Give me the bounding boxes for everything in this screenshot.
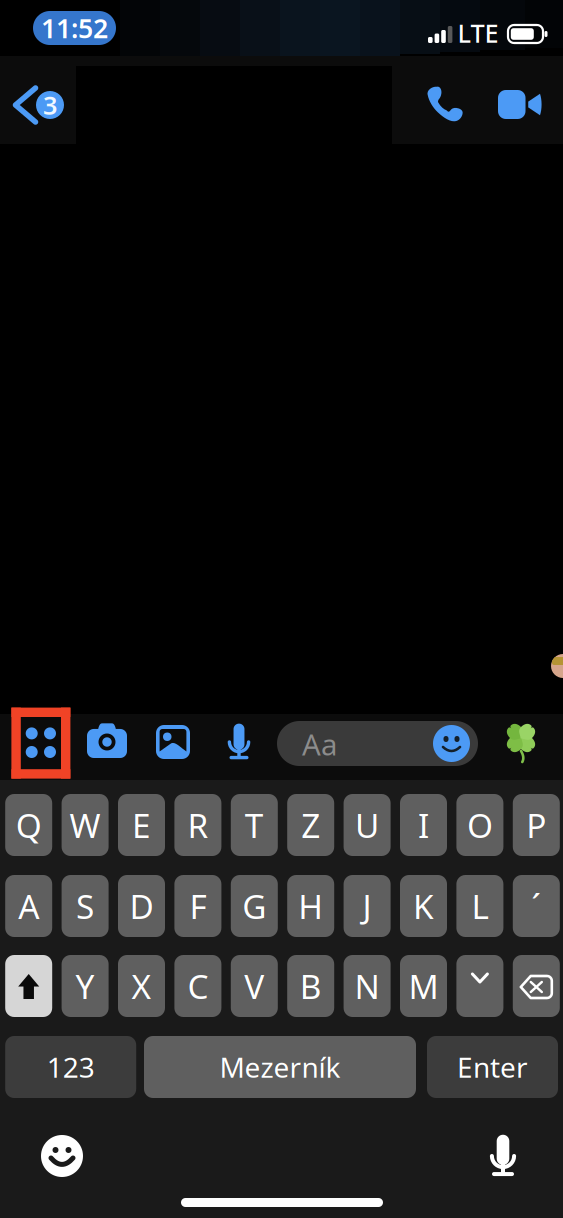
button[interactable]: Q xyxy=(5,794,52,856)
button[interactable]: Dictation xyxy=(462,1118,542,1194)
staticText: ´ xyxy=(531,883,541,929)
staticText: F xyxy=(189,884,206,928)
staticText: P xyxy=(526,803,546,847)
button[interactable]: Delete xyxy=(513,955,560,1017)
button[interactable]: H xyxy=(287,875,334,937)
button[interactable]: U xyxy=(344,794,391,856)
button[interactable]: K xyxy=(400,875,447,937)
staticText: J xyxy=(363,884,372,928)
staticText: 123 xyxy=(47,1048,95,1086)
button[interactable]: P xyxy=(513,794,560,856)
staticText: 11:52 xyxy=(41,10,108,46)
staticText: R xyxy=(187,803,208,847)
staticText: I xyxy=(418,803,429,847)
staticText: H xyxy=(298,884,323,928)
button[interactable]: Z xyxy=(287,794,334,856)
button[interactable]: N xyxy=(344,955,391,1017)
button[interactable]: Voice message xyxy=(216,714,262,780)
staticText: Aa xyxy=(302,724,337,763)
staticText: W xyxy=(70,803,101,847)
staticText: L xyxy=(471,884,488,928)
staticText: U xyxy=(355,803,379,847)
button[interactable]: E xyxy=(118,794,165,856)
button[interactable]: More characters xyxy=(456,955,503,1017)
staticText: K xyxy=(413,884,434,928)
staticText: E xyxy=(132,803,151,847)
staticText: X xyxy=(131,964,151,1008)
button[interactable]: Enter xyxy=(427,1036,558,1098)
button[interactable]: Message xyxy=(277,721,478,766)
staticText: Y xyxy=(76,964,95,1008)
button[interactable]: I xyxy=(400,794,447,856)
button[interactable]: More options xyxy=(0,700,76,786)
staticText: Q xyxy=(16,803,42,847)
staticText: LTE xyxy=(457,16,498,50)
button[interactable]: G xyxy=(231,875,278,937)
button[interactable]: W xyxy=(62,794,109,856)
staticText: C xyxy=(187,964,208,1008)
button[interactable]: A xyxy=(5,875,52,937)
button[interactable]: Back xyxy=(0,62,80,146)
button[interactable]: D xyxy=(118,875,165,937)
staticText: Z xyxy=(301,803,320,847)
button[interactable]: Video call xyxy=(484,73,546,135)
button[interactable]: O xyxy=(456,794,503,856)
staticText: 3 xyxy=(43,88,57,122)
button[interactable]: 123 xyxy=(5,1036,136,1098)
button[interactable]: L xyxy=(456,875,503,937)
staticText: N xyxy=(355,964,380,1008)
button[interactable]: M xyxy=(400,955,447,1017)
staticText: D xyxy=(129,884,153,928)
button[interactable]: F xyxy=(174,875,221,937)
staticText: O xyxy=(467,803,493,847)
button[interactable]: C xyxy=(174,955,221,1017)
button[interactable]: V xyxy=(231,955,278,1017)
staticText: S xyxy=(76,884,94,928)
button[interactable]: R xyxy=(174,794,221,856)
staticText: T xyxy=(245,803,264,847)
button[interactable]: B xyxy=(287,955,334,1017)
button[interactable]: J xyxy=(344,875,391,937)
button[interactable]: Stickers xyxy=(492,714,550,780)
button[interactable]: Camera xyxy=(83,714,131,780)
staticText: A xyxy=(18,884,39,928)
button[interactable]: S xyxy=(62,875,109,937)
button[interactable]: Call xyxy=(414,73,476,135)
button[interactable]: Shift xyxy=(5,955,52,1017)
button[interactable]: X xyxy=(118,955,165,1017)
button[interactable]: Photos xyxy=(150,714,196,780)
staticText: V xyxy=(244,964,264,1008)
staticText: B xyxy=(300,964,322,1008)
button[interactable]: T xyxy=(231,794,278,856)
button[interactable]: ´ xyxy=(513,875,560,937)
button[interactable]: Emoji keyboard xyxy=(22,1118,102,1194)
staticText: Enter xyxy=(457,1048,528,1086)
staticText: M xyxy=(408,964,438,1008)
staticText: Mezerník xyxy=(219,1048,340,1086)
button[interactable]: Mezerník xyxy=(144,1036,416,1098)
button[interactable]: Y xyxy=(62,955,109,1017)
staticText: G xyxy=(242,884,266,928)
